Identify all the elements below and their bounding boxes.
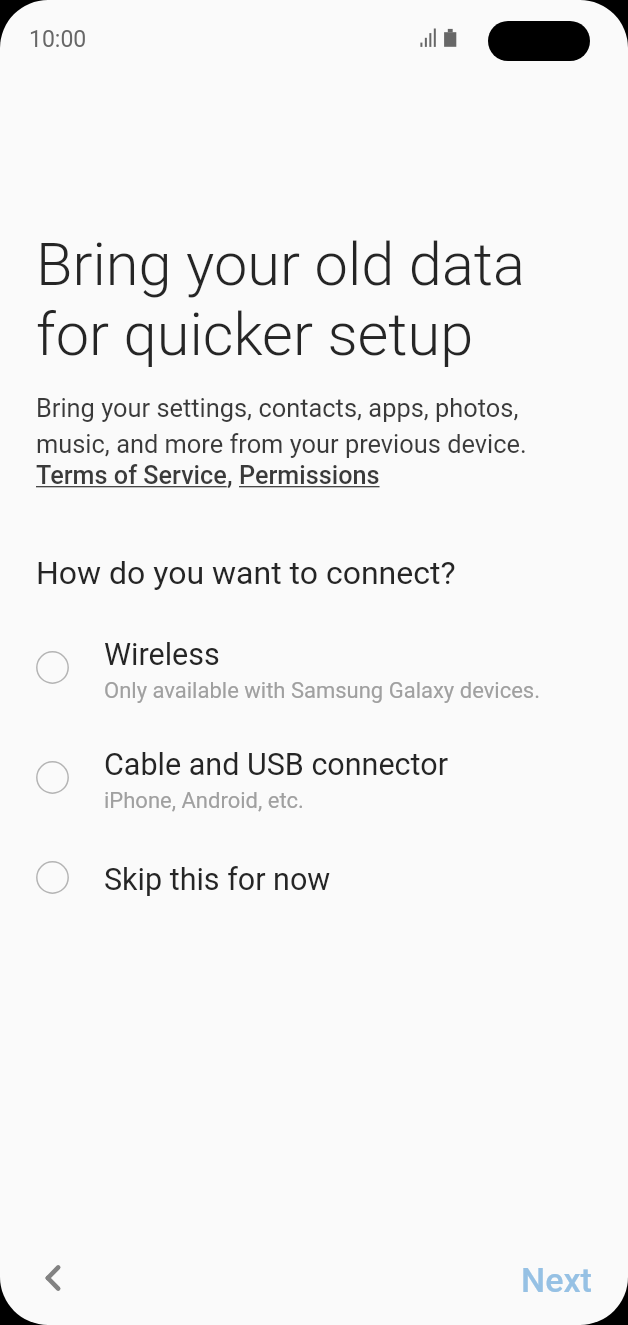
staticText: Permissions xyxy=(239,461,380,491)
button[interactable]: Skip this for now xyxy=(36,862,594,898)
staticText: Next xyxy=(521,1260,592,1300)
button[interactable]: Next xyxy=(503,1248,610,1312)
button[interactable]: Terms of Service xyxy=(36,461,227,491)
staticText: 10:00 xyxy=(29,26,87,53)
staticText: iPhone, Android, etc. xyxy=(104,788,304,814)
button[interactable]: Cable and USB connector xyxy=(36,747,594,814)
staticText: Terms of Service xyxy=(36,461,227,491)
staticText: Skip this for now xyxy=(104,862,331,898)
staticText: Bring your old data for quicker setup xyxy=(36,230,525,370)
staticText: Wireless xyxy=(104,637,220,673)
staticText: Only available with Samsung Galaxy devic… xyxy=(104,678,541,704)
staticText: Bring your settings, contacts, apps, pho… xyxy=(36,393,527,459)
button[interactable]: Permissions xyxy=(239,461,380,491)
staticText: How do you want to connect? xyxy=(36,554,456,592)
staticText: Cable and USB connector xyxy=(104,747,448,783)
other: Battery xyxy=(444,28,457,48)
staticText: , xyxy=(227,461,239,491)
button[interactable]: Back xyxy=(18,1243,88,1313)
button[interactable]: Wireless xyxy=(36,637,594,704)
other: Mobile signal xyxy=(420,28,436,47)
